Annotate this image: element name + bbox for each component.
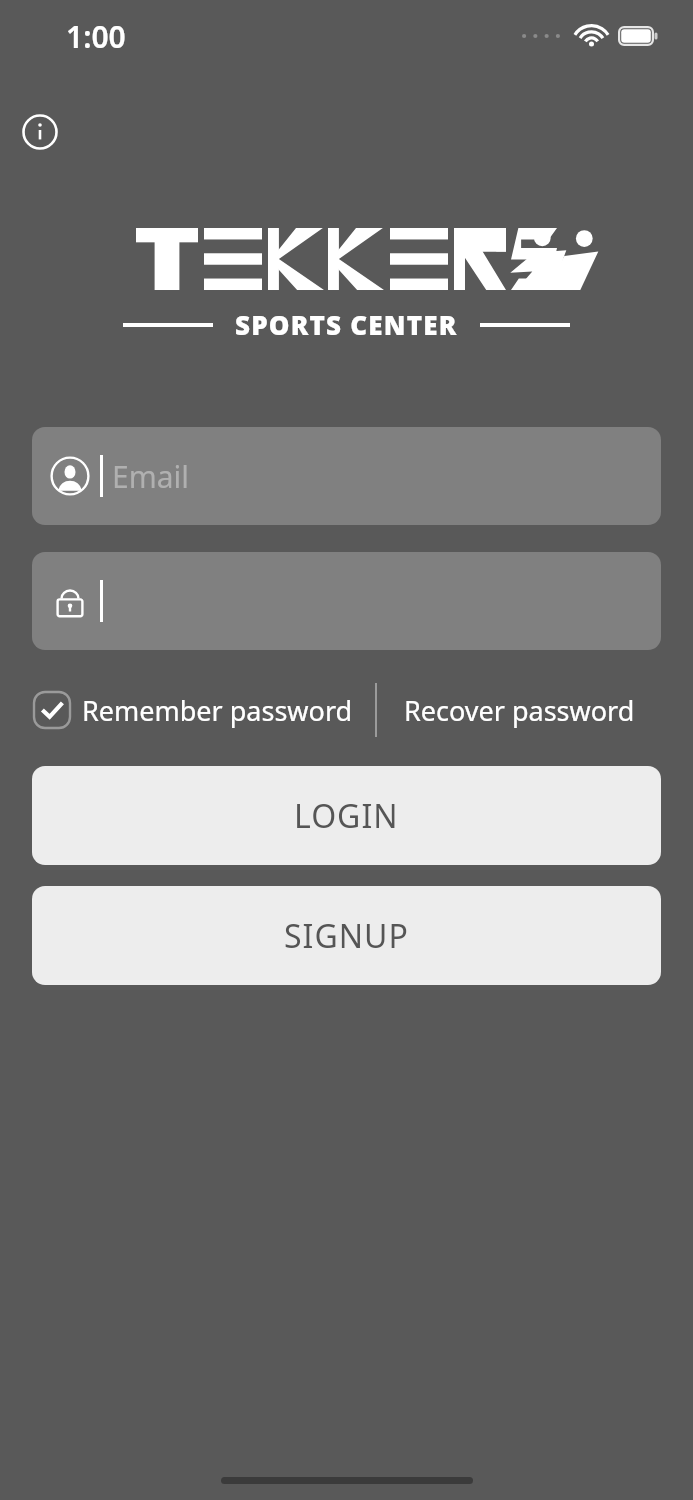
button[interactable]: Information — [16, 108, 64, 156]
button[interactable]: Remember password — [32, 690, 357, 730]
other: Password — [50, 581, 90, 621]
staticText: Remember password — [82, 692, 353, 729]
button[interactable]: LOGIN — [32, 766, 661, 865]
button[interactable]: Recover password — [396, 684, 643, 737]
staticText: LOGIN — [294, 794, 399, 838]
staticText: SIGNUP — [284, 914, 409, 958]
other: Email — [50, 456, 90, 496]
staticText: Email — [112, 456, 190, 497]
button[interactable]: SIGNUP — [32, 886, 661, 985]
staticText: SPORTS CENTER — [235, 307, 458, 342]
button[interactable]: Password — [32, 552, 661, 650]
button[interactable]: Email — [32, 427, 661, 525]
staticText: 1:00 — [66, 16, 126, 57]
